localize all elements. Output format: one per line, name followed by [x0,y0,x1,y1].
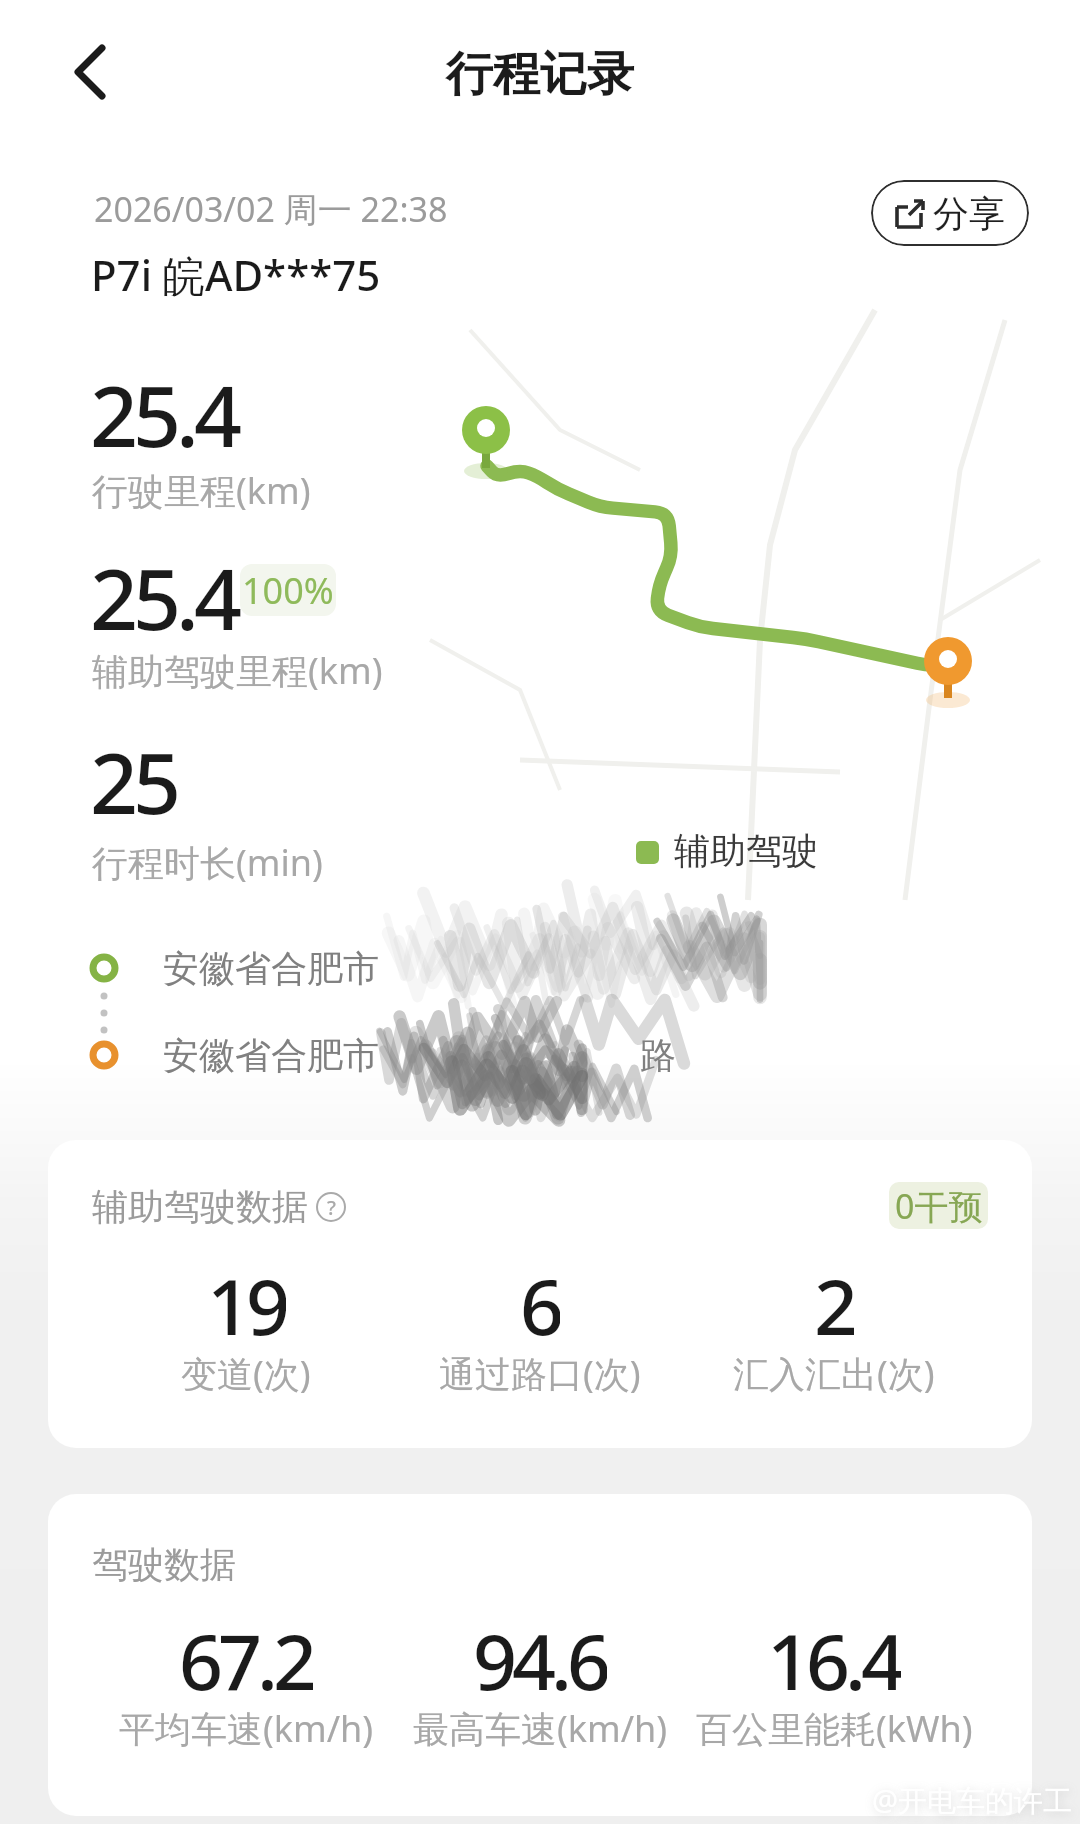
staticText: 19 [207,1253,286,1349]
staticText: 百公里能耗(kWh) [696,1704,973,1753]
staticText: 路 [640,1033,676,1078]
staticText: 行程时长(min) [92,838,323,887]
staticText: 25 [90,724,177,838]
staticText: 2 [814,1253,854,1349]
staticText: 辅助驾驶 [674,828,818,873]
staticText: 67.2 [179,1608,313,1704]
staticText: 平均车速(km/h) [119,1704,374,1753]
staticText: 6 [520,1253,560,1349]
staticText: 25.4 [90,357,237,471]
staticText: P7i 皖AD***75 [91,246,381,303]
button[interactable]: ? [316,1192,346,1222]
staticText: 辅助驾驶里程(km) [92,646,383,695]
staticText: 100% [242,566,334,615]
staticText: 安徽省合肥市 [163,1033,379,1078]
staticText: 行驶里程(km) [92,466,311,515]
staticText: 最高车速(km/h) [413,1704,668,1753]
staticText: 2026/03/02 周一 22:38 [94,186,448,232]
staticText: 0干预 [895,1183,983,1229]
staticText: 25.4 [90,540,237,654]
staticText: 16.4 [767,1608,901,1704]
button[interactable] [52,34,128,110]
staticText: 汇入汇出(次) [733,1349,935,1398]
staticText: 驾驶数据 [92,1542,236,1587]
staticText: @开电车的许工 [872,1780,1073,1820]
staticText: 行程记录 [446,45,634,104]
staticText: 安徽省合肥市 [163,946,379,991]
staticText: 通过路口(次) [439,1349,641,1398]
button[interactable]: 分享 [871,180,1029,246]
staticText: ? [327,1194,336,1221]
staticText: 分享 [933,191,1005,236]
staticText: 94.6 [473,1608,607,1704]
staticText: 辅助驾驶数据 [92,1184,308,1229]
staticText: 变道(次) [181,1349,311,1398]
